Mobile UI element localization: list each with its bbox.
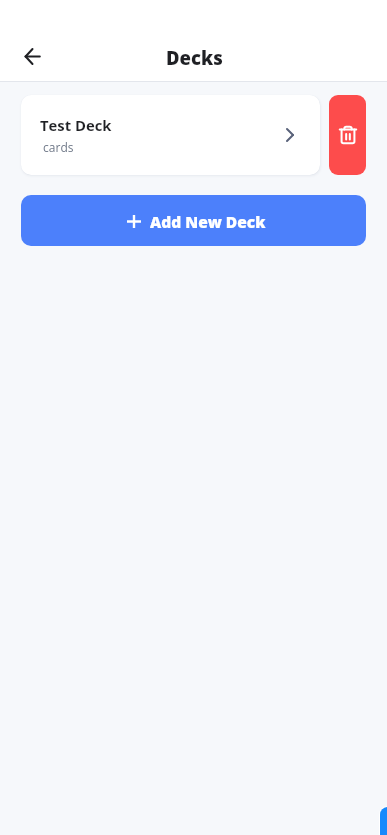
button[interactable]: Back (16, 40, 49, 73)
staticText: Decks (166, 45, 223, 70)
button[interactable]: Open dev menu (380, 807, 387, 835)
staticText: cards (40, 139, 74, 155)
button[interactable]: Test Deck (21, 95, 320, 175)
staticText: Add New Deck (150, 211, 266, 232)
button[interactable]: Delete deck (329, 95, 366, 175)
button[interactable]: Add New Deck (21, 195, 366, 246)
staticText: Test Deck (40, 115, 112, 135)
